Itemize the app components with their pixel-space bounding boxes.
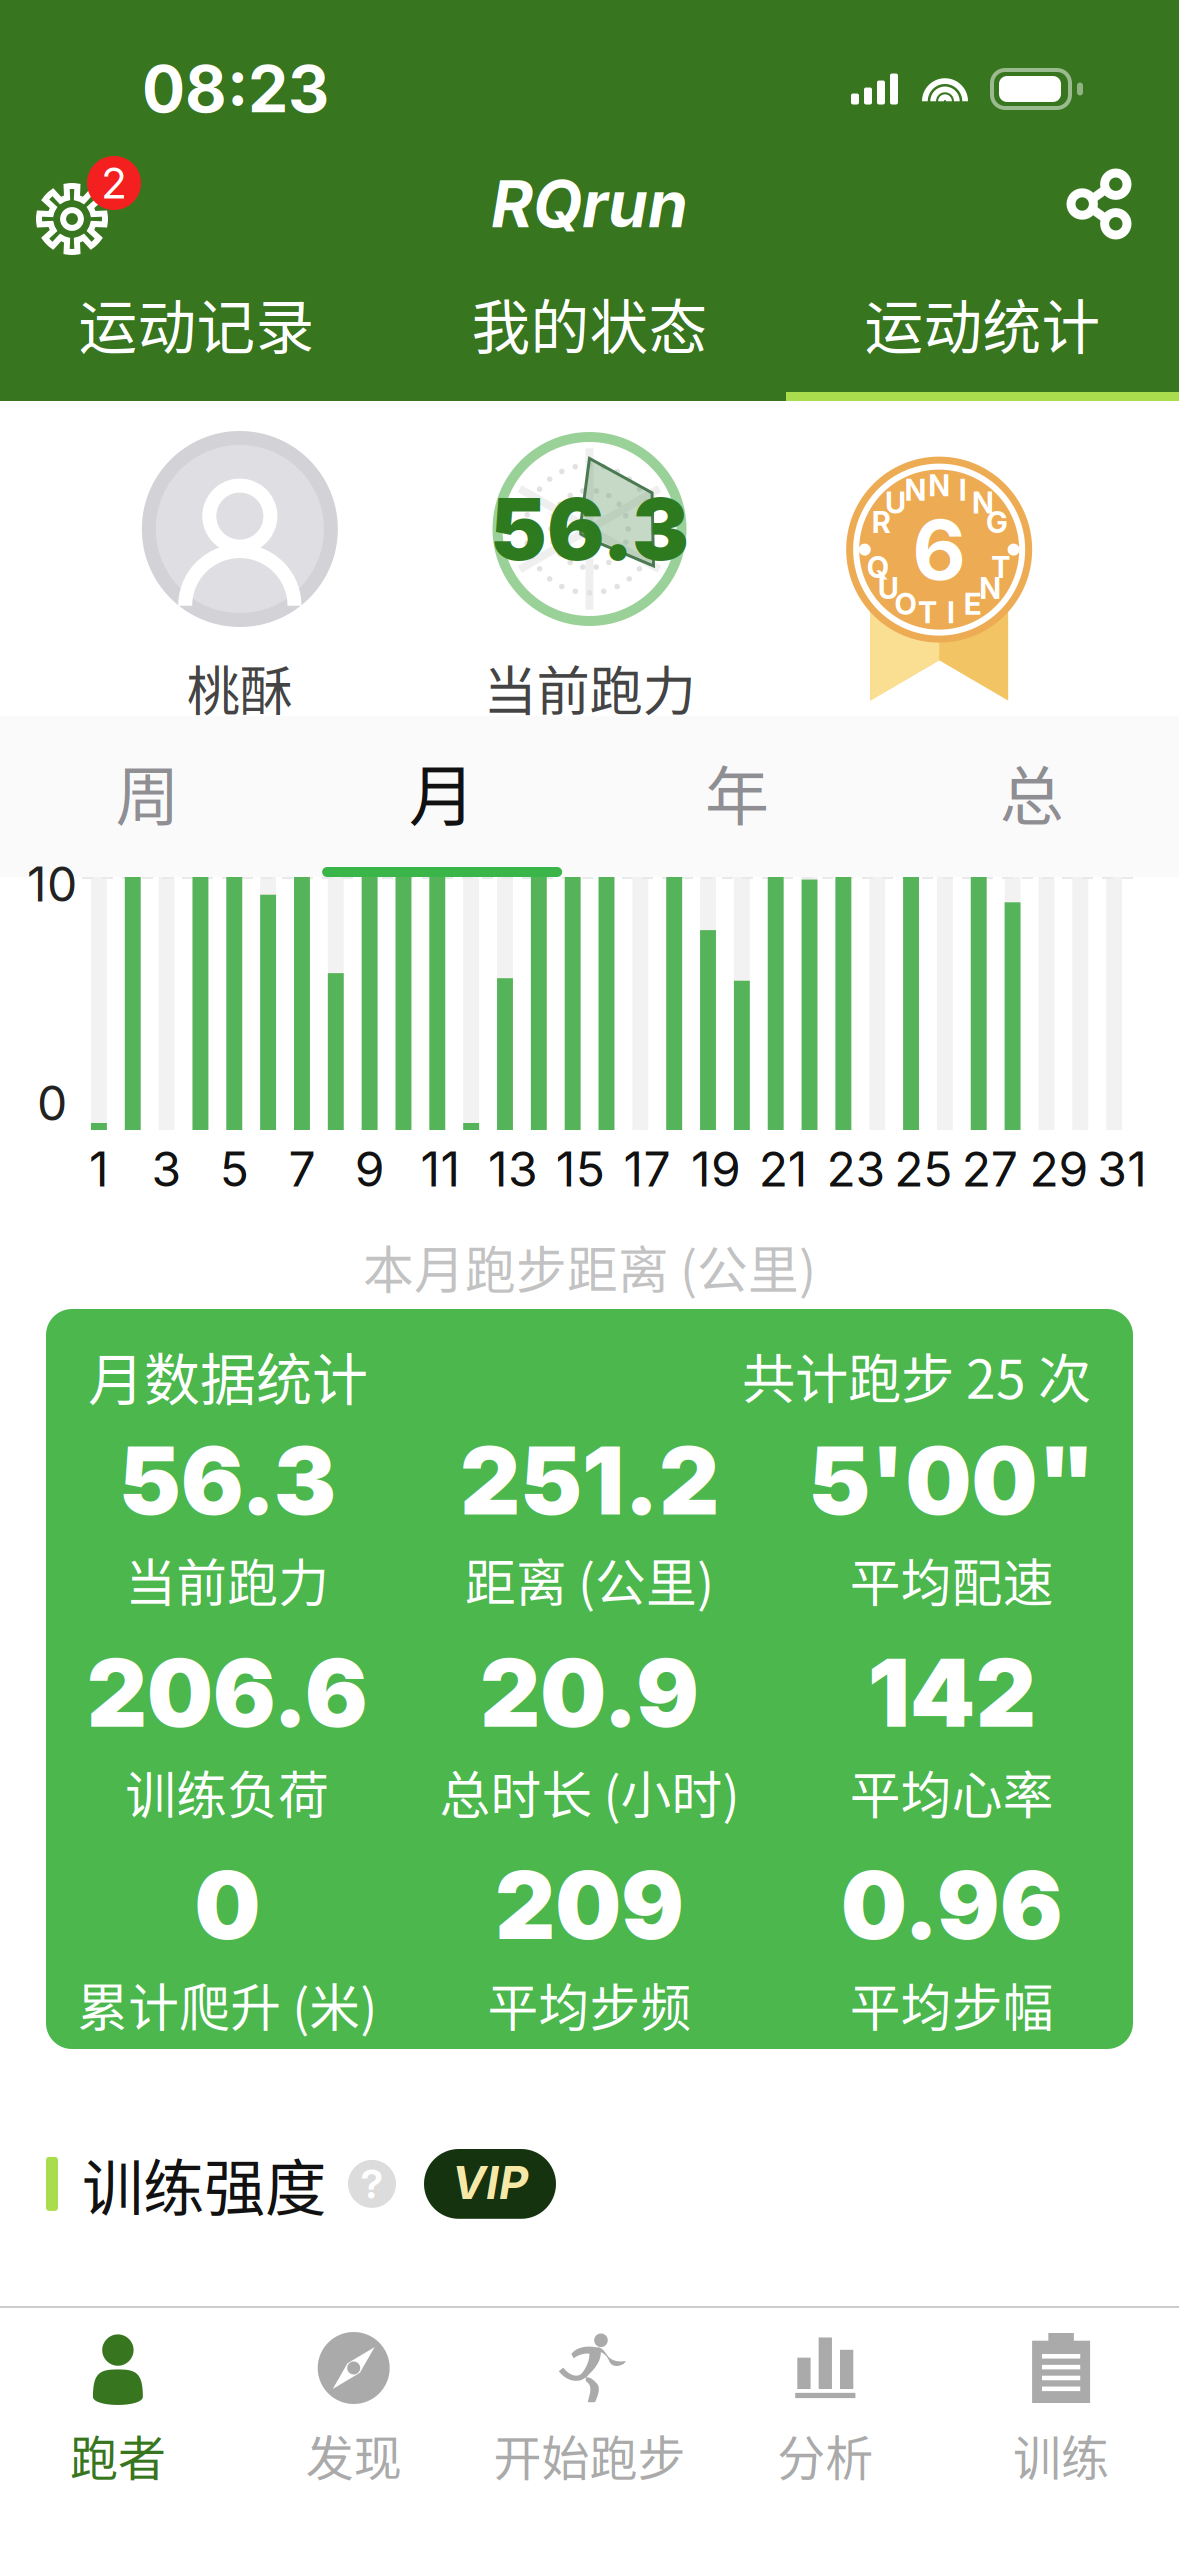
button[interactable]: 总 xyxy=(884,716,1179,877)
staticText: 月数据统计 xyxy=(88,1335,368,1416)
staticText: 训练负荷 xyxy=(125,1755,329,1829)
staticText: 21 xyxy=(759,1140,808,1198)
button[interactable]: 分析 xyxy=(707,2308,943,2489)
staticText: U xyxy=(878,570,899,606)
button[interactable]: 发现 xyxy=(236,2308,472,2489)
staticText: 29 xyxy=(1029,1140,1088,1198)
staticText: 训练 xyxy=(1013,2420,1109,2489)
staticText: 9 xyxy=(355,1140,385,1198)
staticText: O xyxy=(894,586,916,622)
staticText: 10 xyxy=(27,855,77,913)
staticText: 5'00" xyxy=(808,1424,1095,1537)
staticText: N xyxy=(979,570,1001,606)
staticText: 142 xyxy=(868,1636,1036,1749)
staticText: N xyxy=(928,468,950,503)
button[interactable]: 我的状态 xyxy=(393,258,786,401)
staticText: ? xyxy=(360,2160,383,2208)
button[interactable]: 桃酥 xyxy=(65,431,415,726)
staticText: 我的状态 xyxy=(471,281,707,366)
staticText: VIP xyxy=(452,2155,528,2210)
staticText: 56.3 xyxy=(490,477,689,581)
button[interactable]: 年 xyxy=(589,716,884,877)
staticText: 2 xyxy=(101,157,127,209)
staticText: 总时长 (小时) xyxy=(439,1755,739,1829)
staticText: 17 xyxy=(623,1140,670,1198)
staticText: U xyxy=(885,485,906,521)
staticText: 累计爬升 (米) xyxy=(77,1968,377,2041)
staticText: T xyxy=(991,549,1010,585)
button[interactable]: 周 xyxy=(0,716,295,877)
staticText: 分析 xyxy=(777,2420,873,2489)
staticText: 25 xyxy=(894,1140,952,1198)
staticText: 13 xyxy=(488,1140,538,1198)
staticText: 平均步频 xyxy=(487,1968,691,2041)
staticText: 27 xyxy=(962,1140,1018,1198)
staticText: 平均心率 xyxy=(850,1755,1054,1829)
staticText: 平均配速 xyxy=(850,1543,1054,1616)
staticText: 1 xyxy=(89,1140,109,1198)
staticText: 当前跑力 xyxy=(125,1543,329,1616)
button[interactable]: 跑者 xyxy=(0,2308,236,2489)
staticText: 运动统计 xyxy=(864,281,1100,366)
staticText: Q xyxy=(867,549,889,585)
staticText: 251.2 xyxy=(460,1424,719,1537)
staticText: 206.6 xyxy=(87,1636,368,1749)
staticText: 19 xyxy=(691,1140,741,1198)
staticText: N xyxy=(905,472,927,508)
staticText: E xyxy=(964,586,982,622)
staticText: 11 xyxy=(420,1140,460,1198)
staticText: 7 xyxy=(288,1140,315,1198)
staticText: RQrun xyxy=(491,165,688,243)
staticText: 平均步幅 xyxy=(850,1968,1054,2041)
button[interactable]: Help xyxy=(348,2160,396,2208)
staticText: I xyxy=(947,595,955,630)
staticText: 发现 xyxy=(306,2420,402,2489)
staticText: R xyxy=(872,505,891,540)
button[interactable]: VIP xyxy=(424,2149,556,2219)
staticText: 年 xyxy=(705,745,769,838)
staticText: 0 xyxy=(37,1074,67,1132)
staticText: 0 xyxy=(194,1849,260,1962)
staticText: 训练强度 xyxy=(82,2139,326,2228)
staticText: 56.3 xyxy=(119,1424,336,1537)
staticText: 月 xyxy=(409,743,476,840)
button[interactable]: 56.3 xyxy=(415,431,764,726)
staticText: N xyxy=(972,485,994,521)
staticText: 周 xyxy=(115,745,179,838)
staticText: 本月跑步距离 (公里) xyxy=(363,1230,816,1303)
staticText: 共计跑步 25 次 xyxy=(742,1337,1091,1414)
staticText: 跑者 xyxy=(70,2420,166,2489)
button[interactable]: 运动统计 xyxy=(786,258,1179,401)
staticText: 15 xyxy=(556,1140,605,1198)
button[interactable]: 开始跑步 xyxy=(472,2308,707,2489)
staticText: 08:23 xyxy=(142,50,329,128)
staticText: 31 xyxy=(1097,1140,1147,1198)
staticText: 23 xyxy=(826,1140,885,1198)
staticText: 3 xyxy=(152,1140,182,1198)
button[interactable]: Share xyxy=(1047,151,1151,257)
staticText: 20.9 xyxy=(480,1636,699,1749)
staticText: I xyxy=(959,472,967,508)
staticText: 6 xyxy=(912,500,966,600)
button[interactable]: 运动记录 xyxy=(0,258,393,401)
staticText: 开始跑步 xyxy=(493,2420,685,2489)
staticText: 当前跑力 xyxy=(483,649,695,726)
staticText: 209 xyxy=(495,1849,684,1962)
staticText: 运动记录 xyxy=(78,281,314,366)
staticText: 距离 (公里) xyxy=(465,1543,714,1616)
staticText: 5 xyxy=(220,1140,249,1198)
button[interactable]: 训练 xyxy=(943,2308,1179,2489)
staticText: 桃酥 xyxy=(187,649,293,726)
button[interactable]: Settings xyxy=(30,150,150,258)
staticText: 0.96 xyxy=(841,1849,1063,1962)
staticText: T xyxy=(918,595,937,630)
button[interactable]: 月 xyxy=(295,716,590,877)
staticText: G xyxy=(986,505,1008,540)
staticText: 总 xyxy=(1000,745,1064,838)
button[interactable]: R xyxy=(764,452,1114,706)
